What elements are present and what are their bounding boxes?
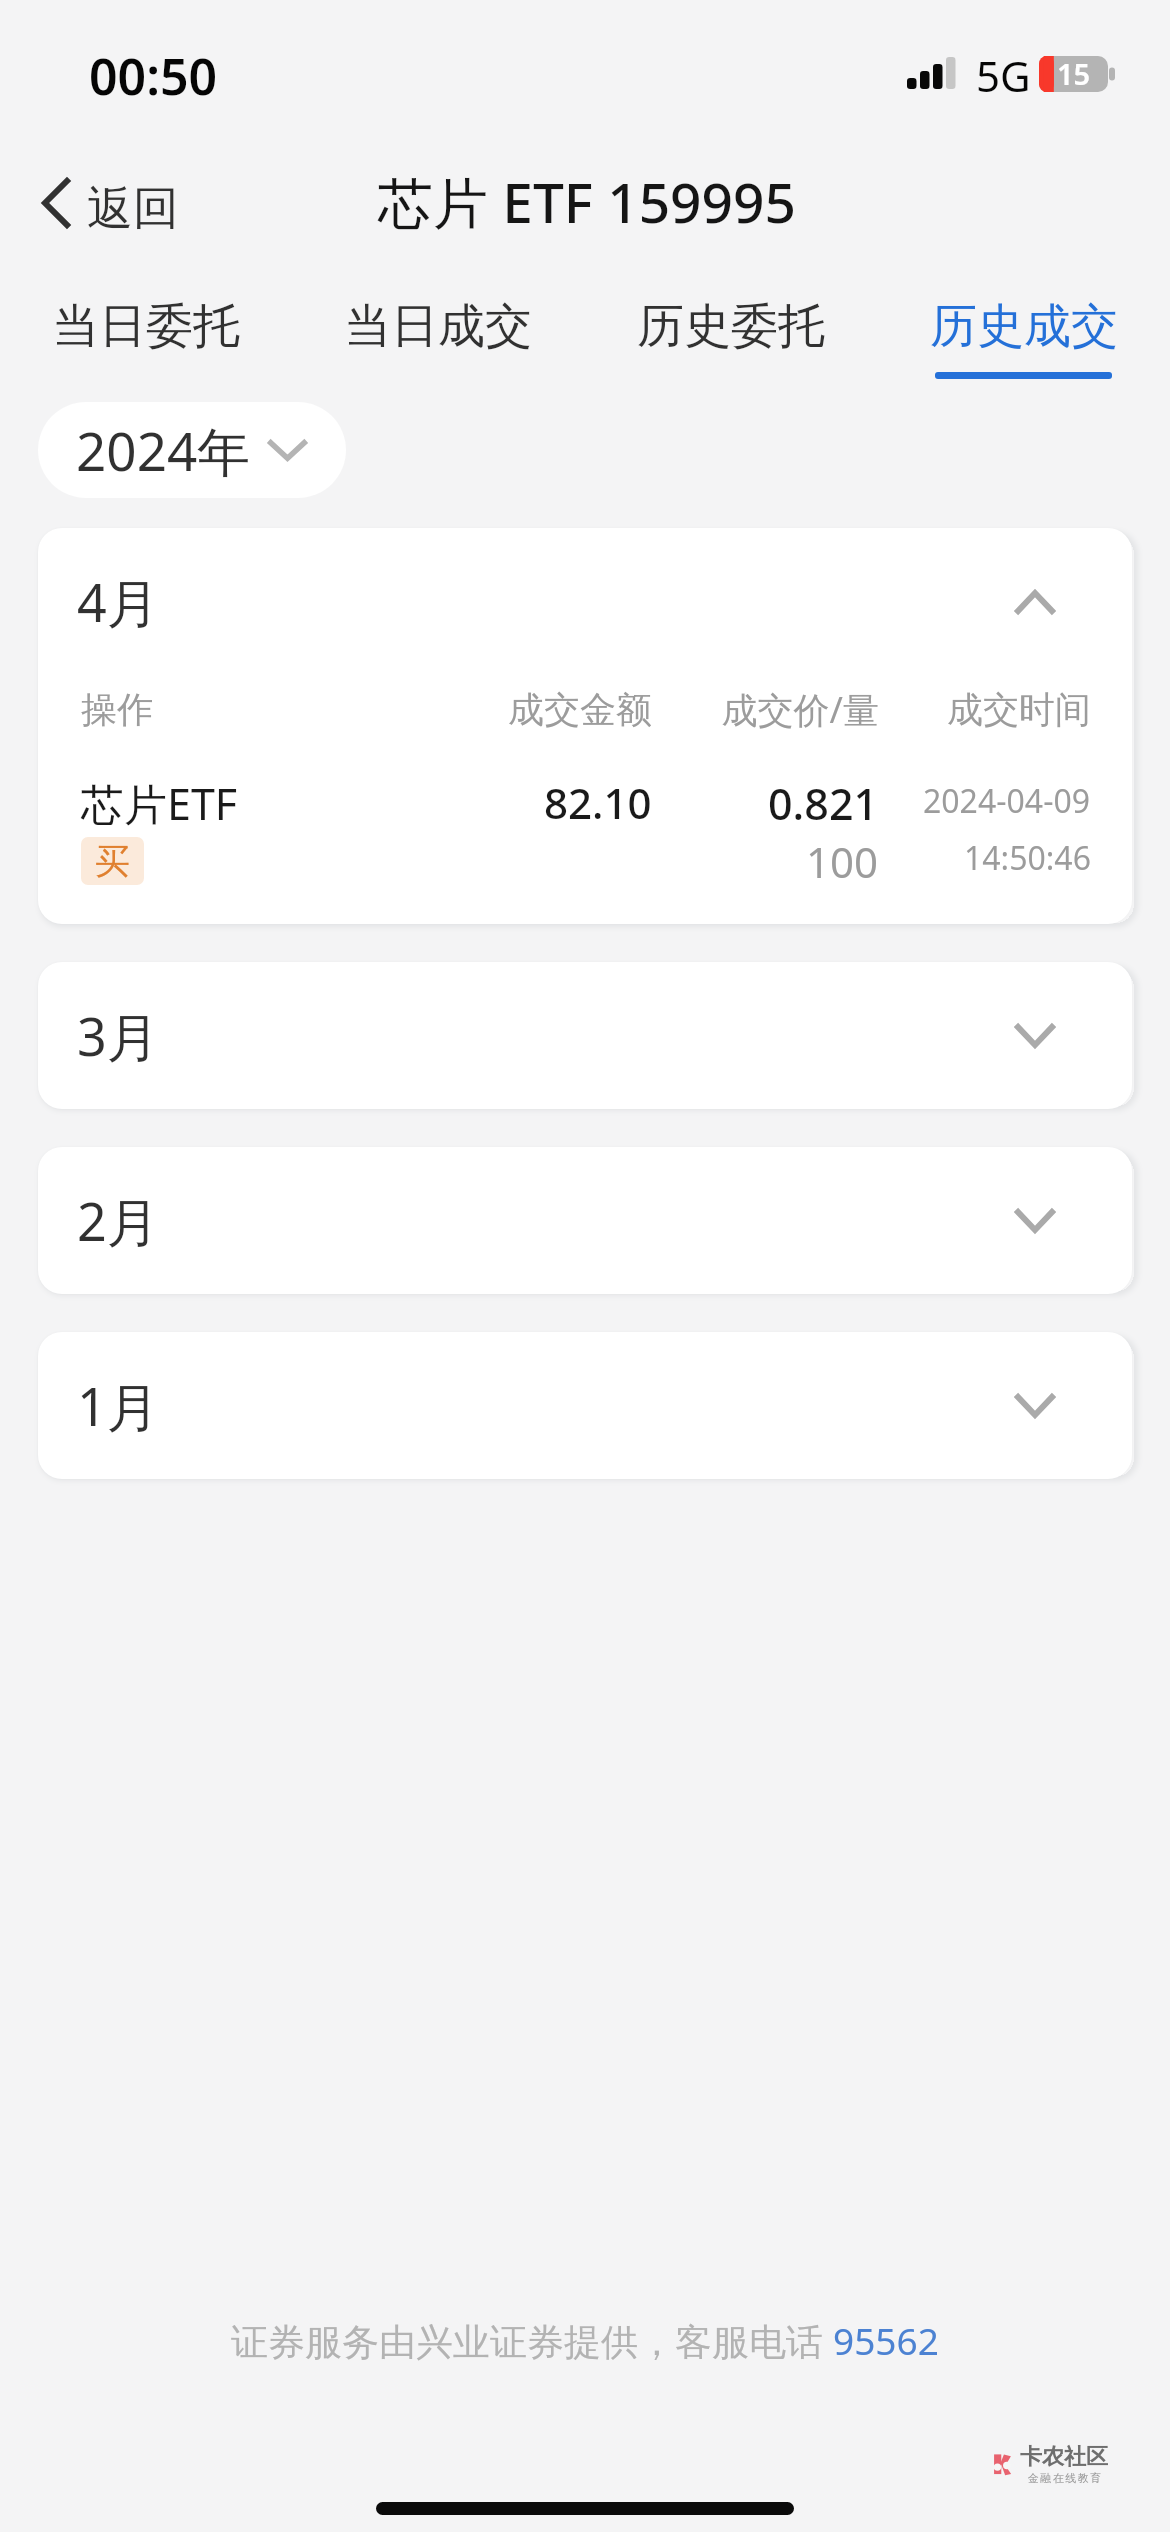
staticText: 2月	[77, 1185, 159, 1256]
staticText: 历史成交	[930, 297, 1118, 356]
button[interactable]: 2024年	[38, 402, 346, 498]
staticText: 历史委托	[637, 297, 825, 356]
button[interactable]: 2月	[38, 1147, 1132, 1294]
staticText: 成交时间	[879, 687, 1091, 732]
button[interactable]: 3月	[38, 962, 1132, 1109]
button[interactable]: 历史委托	[584, 266, 877, 389]
button[interactable]: 返回	[26, 158, 195, 248]
button[interactable]: 当日成交	[292, 266, 584, 389]
staticText: 返回	[87, 180, 179, 238]
staticText: 成交金额	[430, 687, 652, 732]
other: 展开	[1015, 1024, 1055, 1048]
staticText: 4月	[77, 566, 159, 637]
staticText: 14:50:46	[964, 836, 1091, 880]
staticText: 1月	[77, 1370, 159, 1441]
staticText: 5G	[976, 47, 1031, 104]
staticText: 芯片ETF	[81, 774, 238, 833]
other: 展开	[1015, 1209, 1055, 1233]
other: 展开	[1015, 1394, 1055, 1418]
staticText: 操作	[81, 687, 430, 732]
staticText: 2024-04-09	[923, 779, 1091, 823]
button[interactable]: 4月	[38, 528, 1132, 675]
staticText: 成交价/量	[652, 685, 879, 734]
staticText: 卡农社区	[1020, 2443, 1108, 2471]
staticText: 00:50	[89, 42, 218, 110]
button[interactable]: 当日委托	[0, 266, 292, 389]
staticText: 82.10	[544, 774, 652, 831]
button[interactable]: 历史成交	[877, 266, 1170, 389]
staticText: 15	[1057, 54, 1091, 93]
staticText: 3月	[77, 1000, 159, 1071]
other: 收起	[1015, 590, 1055, 614]
staticText: 0.821	[768, 774, 879, 833]
button[interactable]: 95562	[833, 2315, 939, 2365]
staticText: 金融在线教育	[1027, 2471, 1102, 2485]
staticText: 2024年	[76, 414, 251, 486]
staticText: 当日成交	[344, 297, 532, 356]
staticText: 买	[95, 839, 130, 883]
staticText: 芯片 ETF 159995	[378, 164, 796, 239]
button[interactable]: 1月	[38, 1332, 1132, 1479]
staticText: 当日委托	[52, 297, 240, 356]
staticText: 100	[806, 833, 879, 890]
staticText: 证券服务由兴业证券提供，客服电话	[231, 2315, 833, 2366]
